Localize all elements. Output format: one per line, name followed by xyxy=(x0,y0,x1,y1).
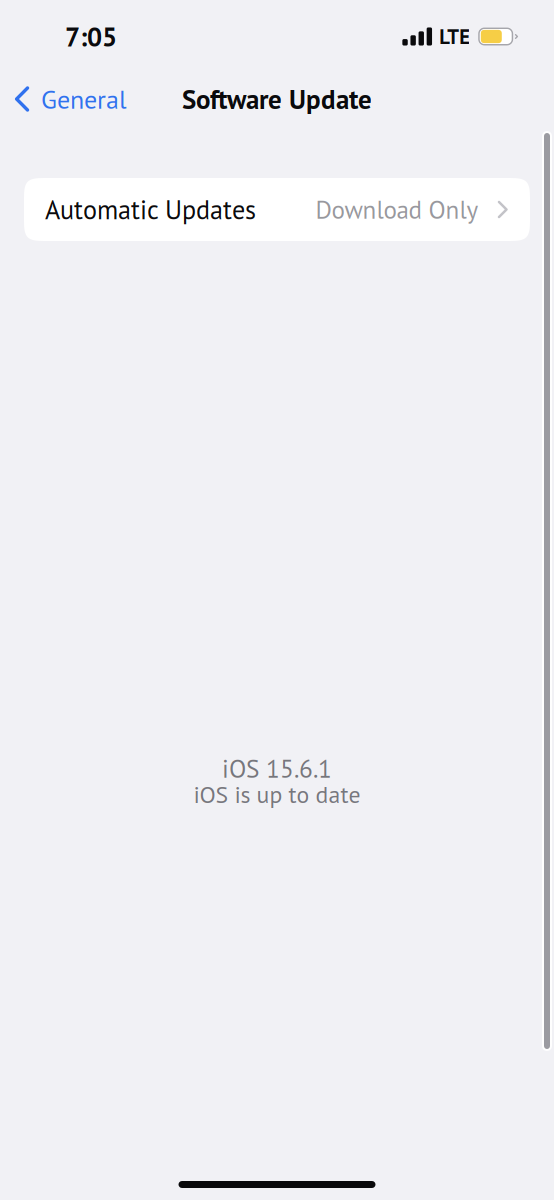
staticText: 7:05 xyxy=(65,19,117,54)
staticText: LTE xyxy=(439,23,470,50)
staticText: iOS 15.6.1 xyxy=(222,752,332,785)
staticText: Software Update xyxy=(182,82,372,116)
button[interactable]: Automatic Updates xyxy=(24,178,530,241)
staticText: General xyxy=(41,82,127,116)
button[interactable]: Back to General xyxy=(0,73,137,125)
staticText: Download Only xyxy=(315,193,478,226)
staticText: iOS is up to date xyxy=(193,779,360,809)
staticText: Automatic Updates xyxy=(45,193,256,226)
